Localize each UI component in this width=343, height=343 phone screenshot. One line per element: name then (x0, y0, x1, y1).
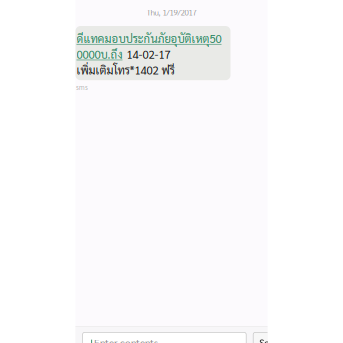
button[interactable]: Enter contents (83, 332, 246, 343)
staticText: sms (76, 83, 88, 92)
staticText: ดีแทคมอบประกันภัยอุบัติเหตุ50 (76, 31, 221, 46)
staticText: Send (259, 336, 279, 343)
staticText: 14-02-17 (126, 47, 170, 61)
staticText: Enter contents (94, 336, 158, 343)
staticText: เพิ่มเติมโทร*1402 ฟรี (76, 62, 174, 77)
staticText: 0000บ.ถึง (76, 47, 122, 61)
button[interactable]: ดีแทคมอบประกันภัยอุบัติเหตุ50 (75, 26, 230, 80)
button[interactable]: Send (253, 332, 285, 343)
staticText: Thu, 1/19/2017 (146, 7, 196, 17)
